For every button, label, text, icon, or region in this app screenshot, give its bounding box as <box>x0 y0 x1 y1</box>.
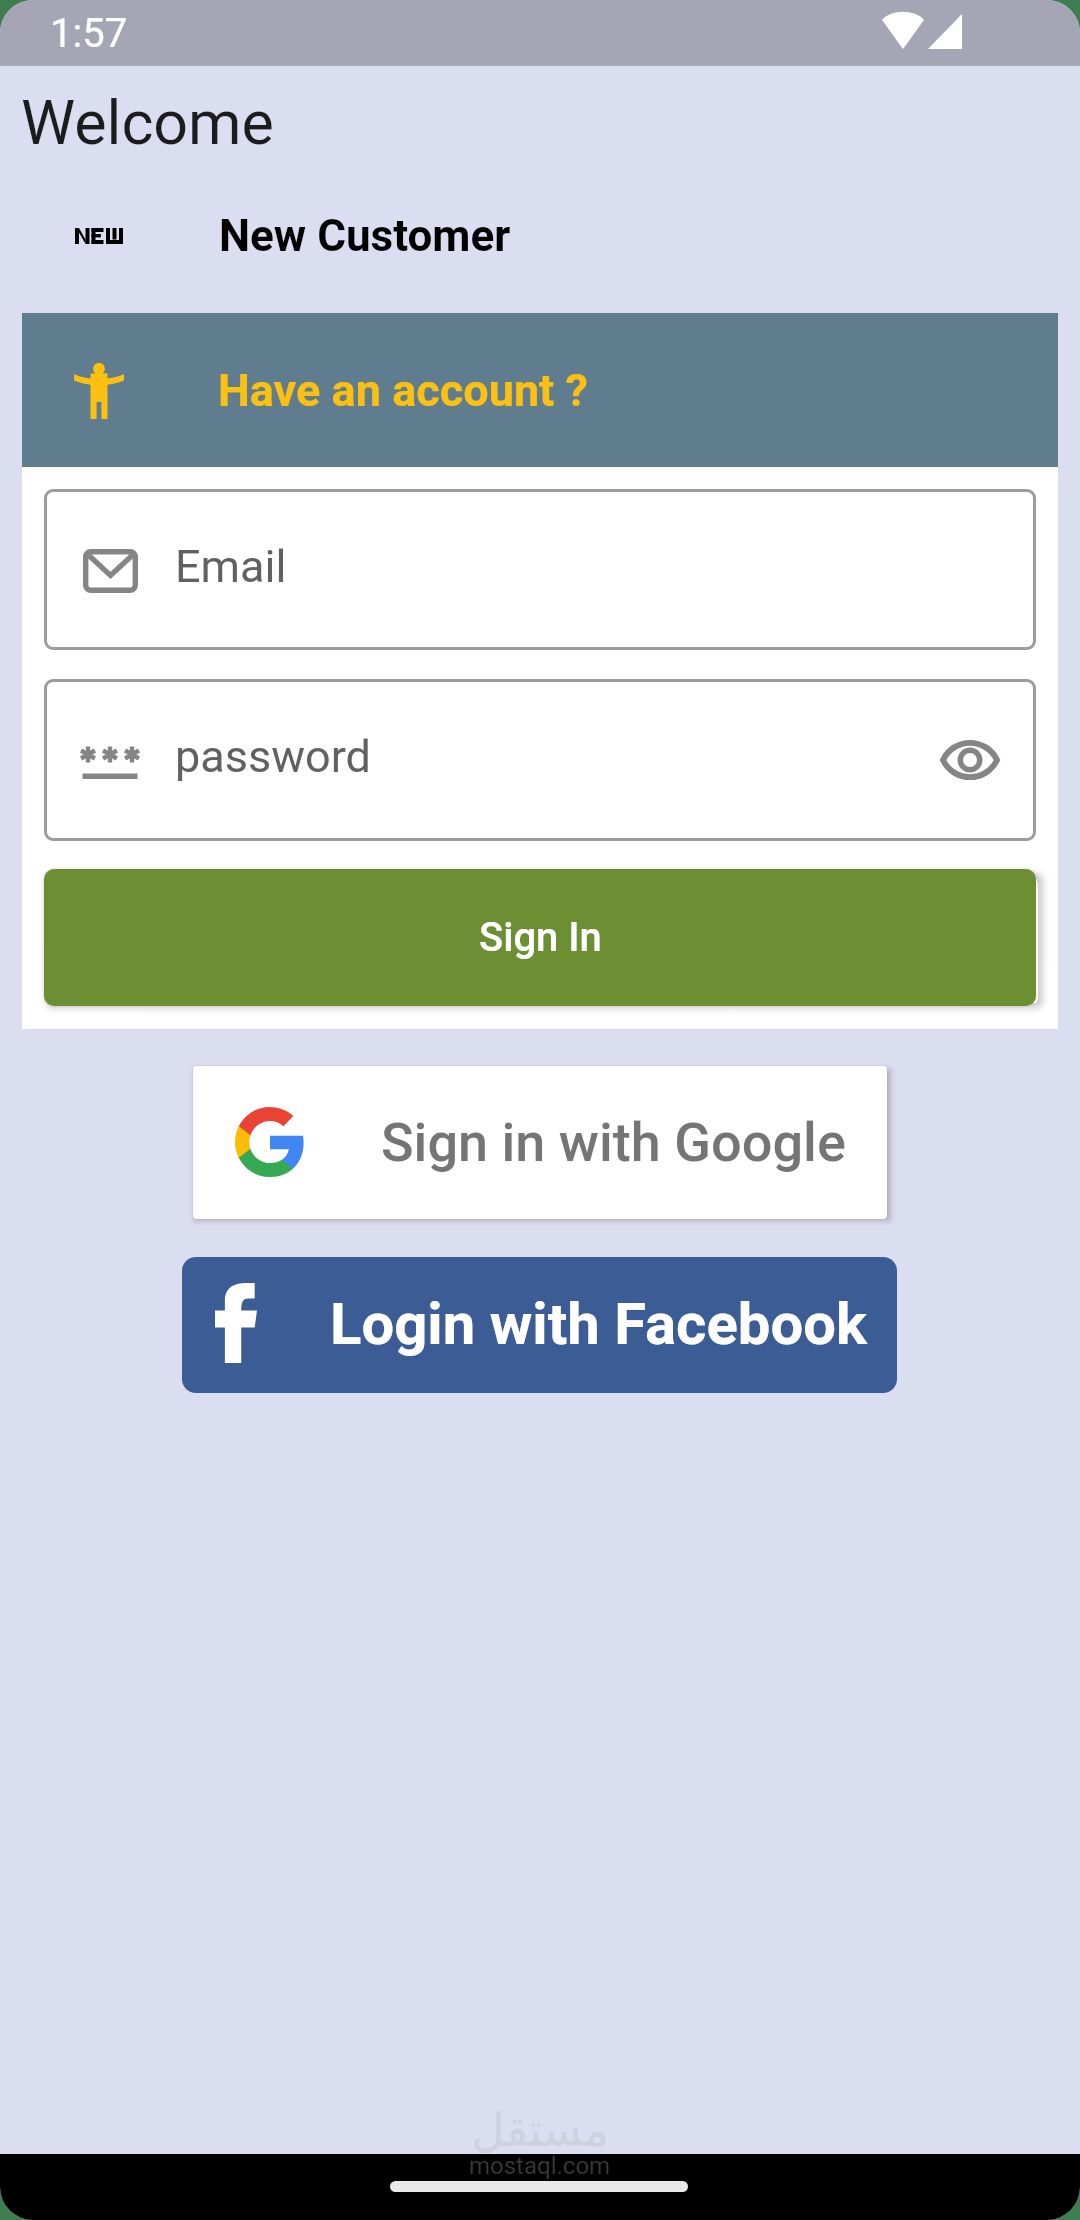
staticText: Email <box>175 540 287 593</box>
staticText: Sign in with Google <box>381 1111 846 1174</box>
button[interactable]: Email <box>44 489 1036 650</box>
button[interactable]: Show password <box>927 717 1013 803</box>
staticText: mostaql.com <box>469 2152 611 2180</box>
staticText: مستقل <box>0 2103 1080 2157</box>
button[interactable] <box>44 679 1036 841</box>
staticText: New Customer <box>219 210 511 262</box>
staticText: 1:57 <box>50 10 128 57</box>
staticText: Sign In <box>479 914 602 961</box>
button[interactable]: Sign in with Google <box>193 1066 887 1219</box>
staticText: Welcome <box>21 87 274 158</box>
button[interactable]: New Customer <box>0 190 1080 282</box>
button[interactable]: Sign In <box>44 869 1036 1006</box>
button[interactable]: Login with Facebook <box>182 1257 897 1393</box>
staticText: password <box>175 730 371 783</box>
staticText: Login with Facebook <box>330 1290 867 1358</box>
button[interactable]: Have an account ? <box>22 313 1058 467</box>
staticText: Have an account ? <box>218 364 588 417</box>
